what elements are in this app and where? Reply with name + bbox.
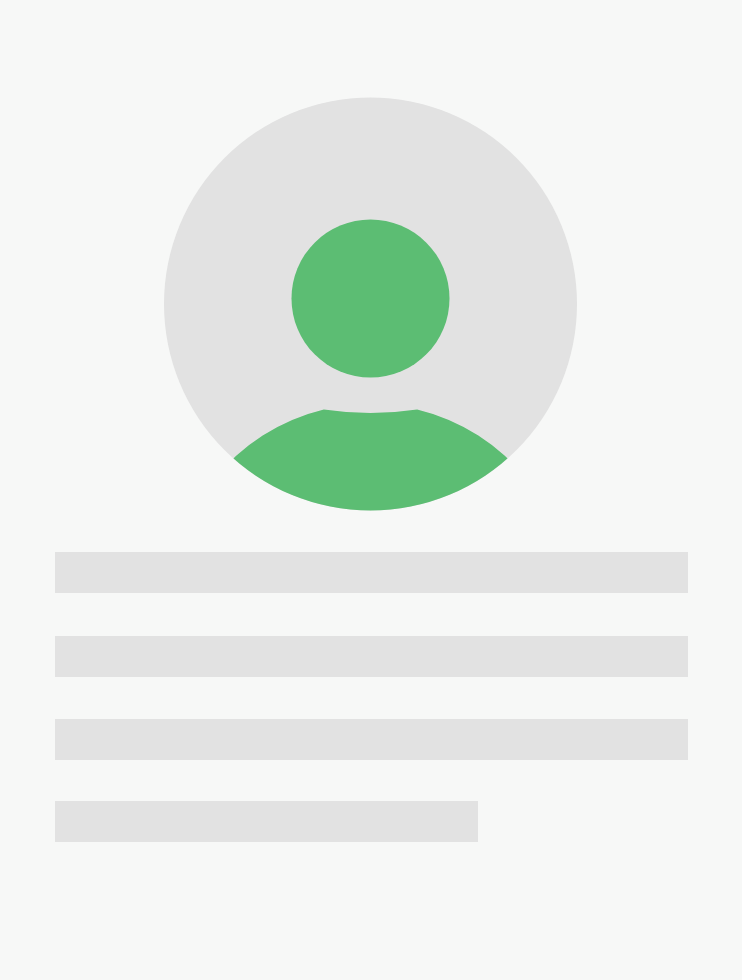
button[interactable]: Profile avatar placeholder, content load…: [0, 0, 742, 980]
